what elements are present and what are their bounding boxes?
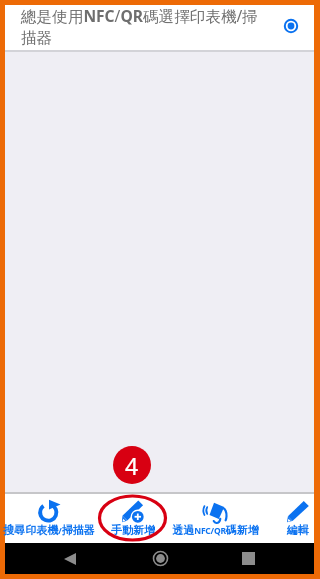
button[interactable]: Always use NFC/QR <box>283 18 299 34</box>
staticText: 4 <box>125 450 139 481</box>
staticText: 搜尋印表機/掃描器 <box>3 523 95 537</box>
button[interactable]: 搜尋印表機/掃描器 <box>0 494 97 543</box>
staticText: 總是使用NFC/QR碼選擇印表機/掃描器 <box>21 5 261 47</box>
button[interactable]: 編輯 <box>281 494 315 543</box>
staticText: 透過NFC/QR碼新增 <box>172 523 259 537</box>
button[interactable]: 手動新增 <box>107 494 159 543</box>
button[interactable]: 總是使用NFC/QR碼選擇印表機/掃描器 <box>5 5 314 50</box>
button[interactable]: 透過NFC/QR碼新增 <box>171 494 259 543</box>
staticText: 編輯 <box>287 523 309 537</box>
staticText: 手動新增 <box>111 523 155 537</box>
button[interactable]: Home <box>143 543 177 574</box>
button[interactable]: Recents <box>231 543 265 574</box>
button[interactable]: Back <box>53 543 87 574</box>
